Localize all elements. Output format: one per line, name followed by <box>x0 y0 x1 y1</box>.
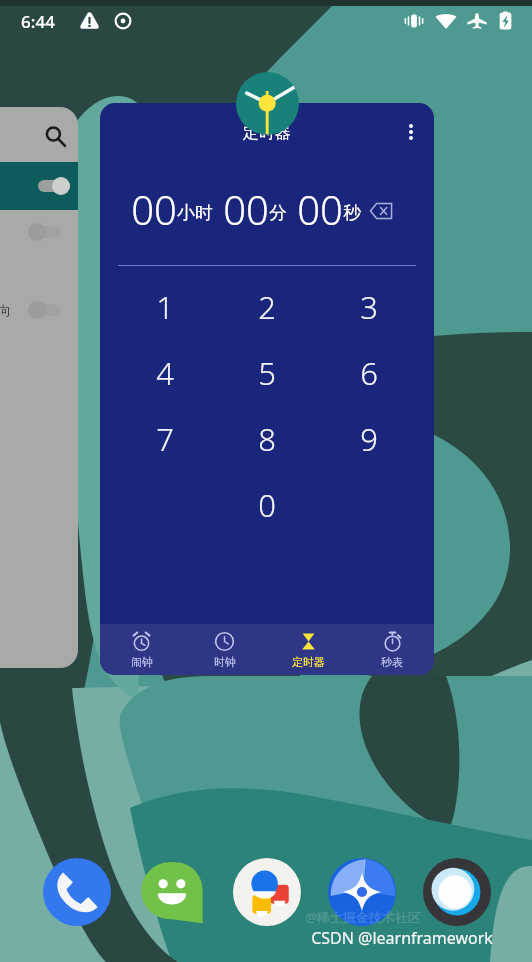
staticText: 时钟 <box>214 655 236 669</box>
button[interactable]: Camera <box>423 858 491 926</box>
staticText: 分 <box>269 202 287 225</box>
button[interactable]: 7 <box>113 406 216 472</box>
button[interactable]: 定时器 <box>266 624 350 675</box>
button[interactable]: 0 <box>216 472 318 538</box>
button[interactable]: 5 <box>216 340 318 406</box>
button[interactable]: 2 <box>216 274 318 340</box>
button[interactable]: 闹钟 <box>100 624 183 675</box>
staticText: 8 <box>258 418 276 460</box>
button[interactable]: 向 <box>0 107 78 668</box>
staticText: @稀土掘金技术社区 <box>305 908 421 926</box>
staticText: 6:44 <box>21 10 55 33</box>
staticText: 9 <box>360 418 378 460</box>
staticText: 定时器 <box>292 655 325 669</box>
staticText: 闹钟 <box>131 655 153 669</box>
staticText: 7 <box>156 418 174 460</box>
staticText: 5 <box>258 352 276 394</box>
button[interactable]: 时钟 <box>183 624 266 675</box>
staticText: 6 <box>360 352 378 394</box>
staticText: 秒 <box>343 202 361 225</box>
staticText: 3 <box>360 286 378 328</box>
button[interactable]: 6 <box>318 340 420 406</box>
staticText: 1 <box>156 286 174 328</box>
staticText: 00 <box>297 182 343 228</box>
button[interactable]: More options <box>392 113 430 151</box>
button[interactable]: 3 <box>318 274 420 340</box>
staticText: 0 <box>258 484 276 526</box>
button[interactable]: 秒表 <box>350 624 434 675</box>
button[interactable]: Messages <box>138 858 206 926</box>
staticText: 00 <box>131 182 177 228</box>
button[interactable]: Backspace <box>363 193 399 229</box>
staticText: 2 <box>258 286 276 328</box>
button[interactable]: 4 <box>113 340 216 406</box>
button[interactable]: 8 <box>216 406 318 472</box>
button[interactable]: Photos <box>233 858 301 926</box>
staticText: 00 <box>223 182 269 228</box>
staticText: CSDN @learnframework <box>311 927 493 949</box>
button[interactable]: 9 <box>318 406 420 472</box>
staticText: 小时 <box>177 202 213 225</box>
button[interactable]: Maps <box>328 858 396 926</box>
staticText: 秒表 <box>381 655 403 669</box>
button[interactable]: Phone <box>43 858 111 926</box>
staticText: 4 <box>156 352 174 394</box>
staticText: 定时器 <box>243 123 291 143</box>
button[interactable]: 1 <box>113 274 216 340</box>
staticText: 向 <box>0 302 11 318</box>
